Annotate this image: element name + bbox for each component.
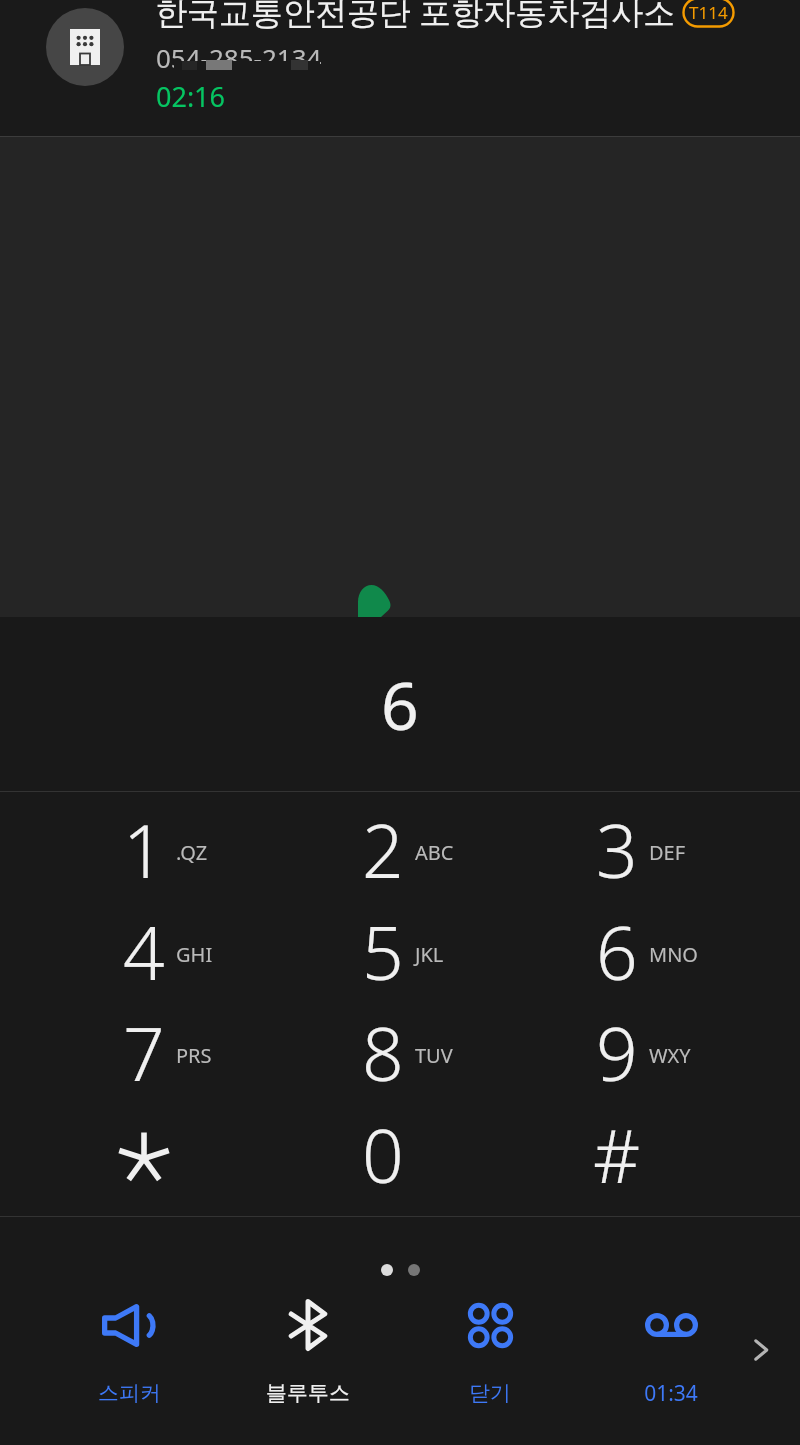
button[interactable]: Call <box>356 583 392 617</box>
button[interactable]: 7 <box>25 1000 263 1104</box>
staticText: 닫기 <box>469 1380 511 1406</box>
staticText: 054-285-2134 <box>156 40 322 75</box>
staticText: 0 <box>362 1105 404 1204</box>
staticText: 4 <box>123 902 165 1001</box>
staticText: # <box>593 1105 641 1204</box>
button[interactable]: 1 <box>25 797 263 901</box>
staticText: T114 <box>689 1 728 24</box>
button[interactable]: 닫기 <box>410 1288 570 1413</box>
staticText: 2 <box>362 800 404 899</box>
staticText: 스피커 <box>98 1380 161 1406</box>
staticText: TUV <box>415 1042 453 1069</box>
staticText: ABC <box>415 839 454 866</box>
button[interactable]: 블루투스 <box>228 1288 388 1413</box>
staticText: 8 <box>362 1003 404 1102</box>
button[interactable]: # <box>498 1102 736 1206</box>
staticText: 9 <box>596 1003 638 1102</box>
staticText: 6 <box>596 902 638 1001</box>
button[interactable]: 5 <box>264 899 502 1003</box>
button[interactable]: 6 <box>498 899 736 1003</box>
button[interactable] <box>25 1102 263 1206</box>
staticText: PRS <box>176 1042 212 1069</box>
staticText: GHI <box>176 941 213 968</box>
button[interactable]: Contact photo <box>46 8 124 86</box>
staticText: 6 <box>381 659 419 749</box>
staticText: 1 <box>123 800 165 899</box>
button[interactable]: 8 <box>264 1000 502 1104</box>
staticText: 01:34 <box>644 1379 698 1408</box>
staticText: 3 <box>596 800 638 899</box>
staticText: WXY <box>649 1042 691 1069</box>
button[interactable]: 스피커 <box>49 1288 209 1413</box>
button[interactable]: 01:34 <box>591 1288 751 1413</box>
staticText: .QZ <box>176 839 208 866</box>
button[interactable]: 9 <box>498 1000 736 1104</box>
button[interactable]: 0 <box>264 1102 502 1206</box>
staticText: MNO <box>649 941 698 968</box>
staticText: 02:16 <box>156 78 226 115</box>
staticText: 블루투스 <box>266 1380 350 1406</box>
button[interactable]: 2 <box>264 797 502 901</box>
staticText: 한국교통안전공단 포항자동차검사소 <box>155 0 676 34</box>
staticText: 7 <box>123 1003 165 1102</box>
button[interactable]: 4 <box>25 899 263 1003</box>
staticText: 5 <box>362 902 404 1001</box>
button[interactable]: 3 <box>498 797 736 901</box>
button[interactable]: More options <box>737 1326 785 1374</box>
staticText: DEF <box>649 839 686 866</box>
staticText: JKL <box>415 941 444 968</box>
